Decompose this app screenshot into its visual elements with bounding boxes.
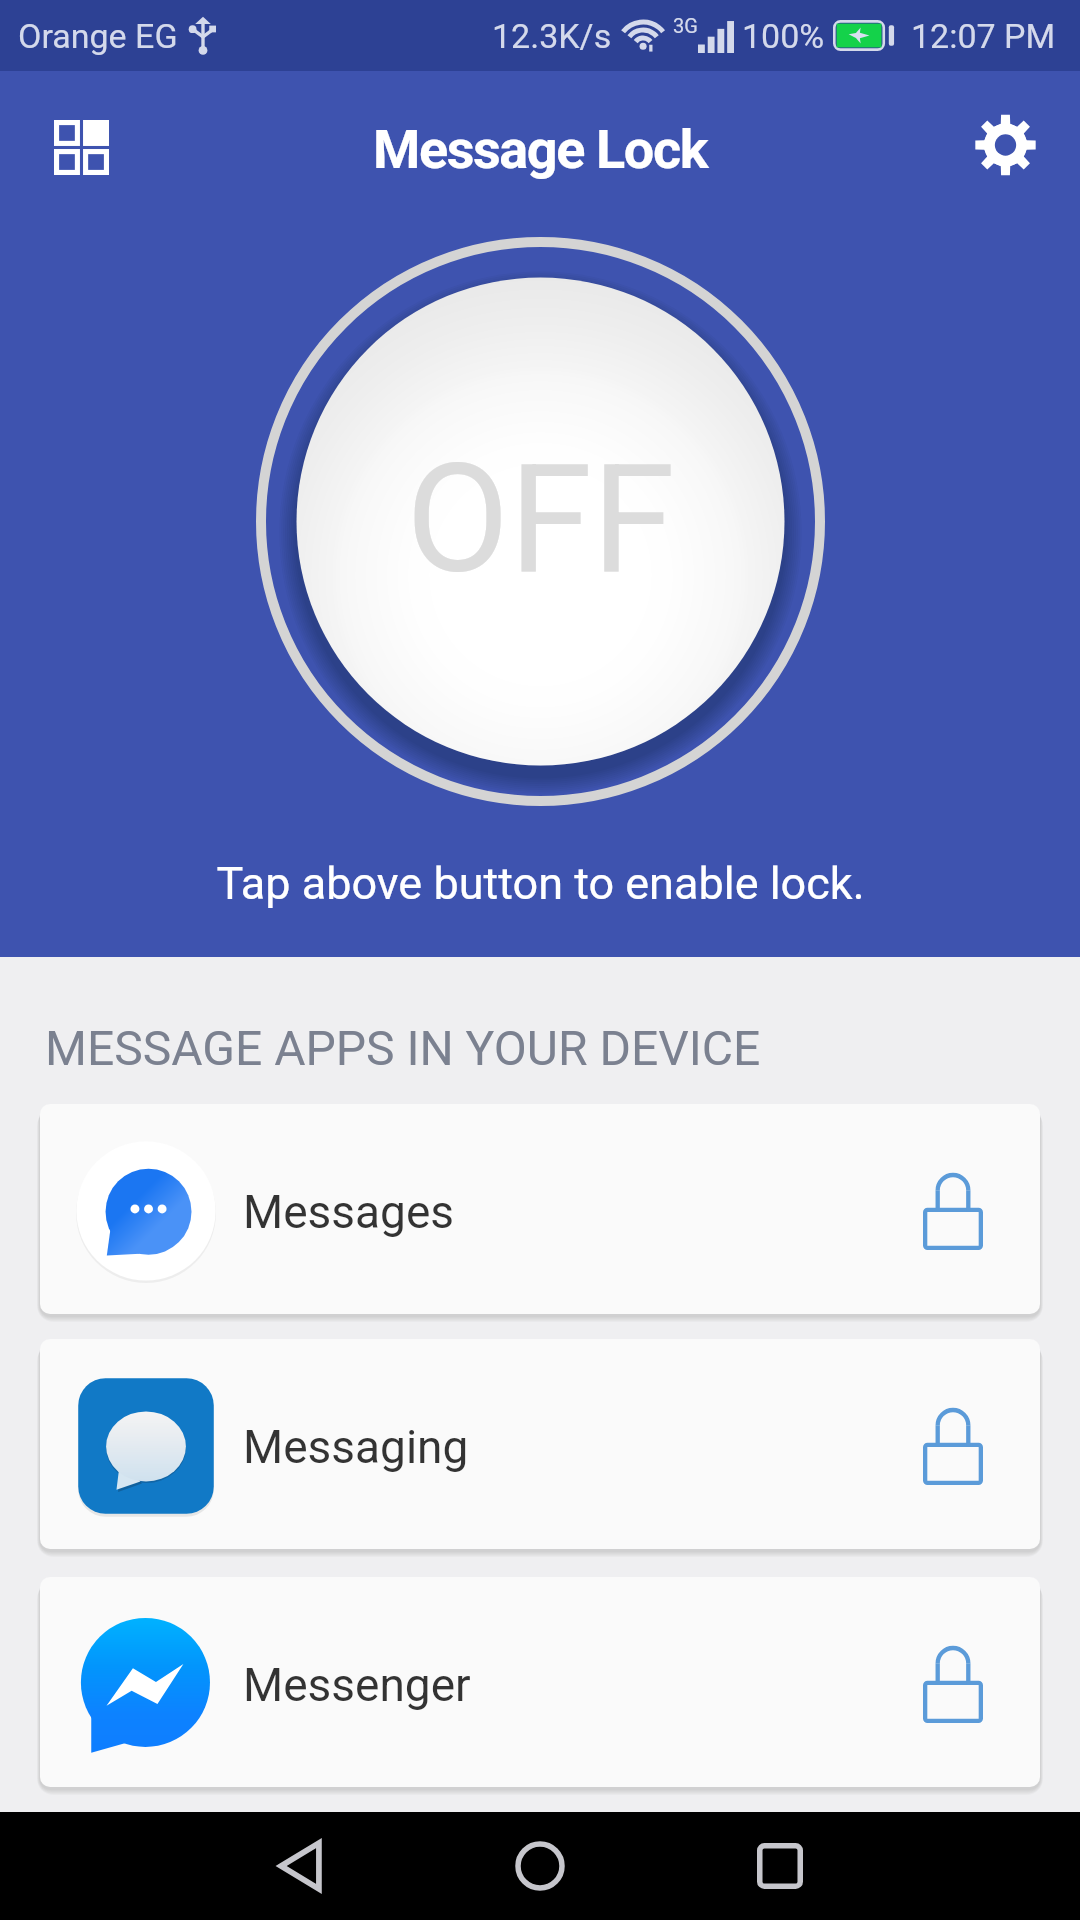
- button[interactable]: Lock Messages: [905, 1164, 1001, 1260]
- staticText: 3G: [673, 14, 698, 37]
- button[interactable]: Settings: [940, 73, 1070, 216]
- staticText: Messaging: [243, 1420, 469, 1474]
- button[interactable]: Back: [240, 1812, 360, 1920]
- staticText: 12:07 PM: [911, 16, 1056, 56]
- staticText: Messenger: [243, 1658, 471, 1712]
- button[interactable]: Home: [480, 1812, 600, 1920]
- button[interactable]: Toggle message lock, currently off: [230, 211, 851, 832]
- button[interactable]: Lock Messenger: [905, 1637, 1001, 1733]
- button[interactable]: Messages: [40, 1104, 1040, 1314]
- button[interactable]: Lock Messaging: [905, 1399, 1001, 1495]
- staticText: 12.3K/s: [492, 16, 612, 56]
- button[interactable]: Recents: [720, 1812, 840, 1920]
- staticText: MESSAGE APPS IN YOUR DEVICE: [45, 1020, 761, 1076]
- staticText: Messages: [243, 1185, 455, 1239]
- staticText: 100%: [742, 16, 825, 56]
- button[interactable]: Messenger: [40, 1577, 1040, 1787]
- staticText: OFF: [406, 432, 676, 608]
- staticText: Orange EG: [18, 16, 178, 56]
- button[interactable]: Messaging: [40, 1339, 1040, 1549]
- staticText: Tap above button to enable lock.: [216, 857, 865, 910]
- staticText: Message Lock: [373, 118, 708, 181]
- button[interactable]: Dashboard: [14, 79, 148, 215]
